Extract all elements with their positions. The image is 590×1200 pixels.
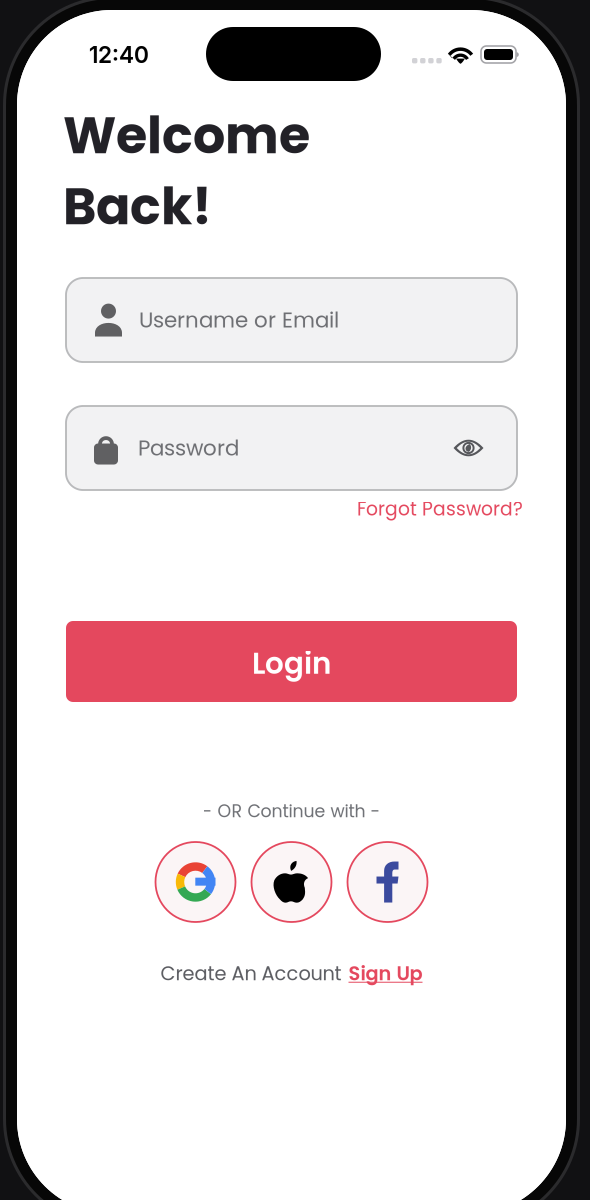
staticText: Login <box>252 643 331 684</box>
staticText: Password <box>138 433 239 463</box>
staticText: Back! <box>63 171 212 242</box>
button[interactable]: Login <box>66 621 517 702</box>
button[interactable]: Sign Up <box>348 960 422 987</box>
button[interactable]: Continue with Facebook <box>347 842 427 922</box>
staticText: 12:40 <box>89 41 149 68</box>
staticText: Sign Up <box>348 960 422 987</box>
button[interactable]: Continue with Apple <box>251 842 331 922</box>
staticText: - OR Continue with - <box>202 799 380 823</box>
button[interactable]: Show password <box>450 432 487 464</box>
staticText: Forgot Password? <box>357 496 523 522</box>
staticText: Welcome <box>63 100 310 171</box>
button[interactable]: Continue with Google <box>155 842 235 922</box>
button[interactable]: Forgot Password? <box>355 493 525 525</box>
staticText: Username or Email <box>139 305 339 335</box>
staticText: Create An Account <box>160 960 341 987</box>
